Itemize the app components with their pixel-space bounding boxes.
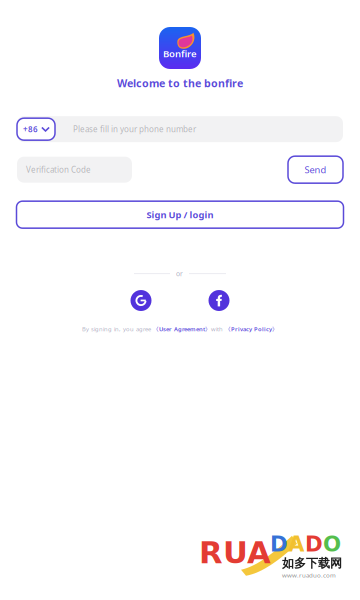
- staticText: with: [211, 325, 225, 333]
- staticText: Welcome to the bonfire: [117, 76, 243, 90]
- staticText: D: [305, 532, 323, 557]
- staticText: 《Privacy Policy》: [225, 325, 278, 333]
- staticText: Bonfire: [163, 47, 197, 60]
- staticText: O: [323, 532, 341, 557]
- staticText: Please fill in your phone number: [73, 124, 196, 134]
- staticText: +86: [23, 124, 38, 135]
- staticText: 如多下载网: [282, 556, 342, 571]
- button[interactable]: +86: [17, 118, 55, 140]
- staticText: Verification Code: [26, 164, 91, 175]
- staticText: By signing in, you agree: [82, 325, 153, 333]
- button[interactable]: Sign Up / login: [16, 201, 343, 228]
- staticText: Sign Up / login: [146, 208, 213, 221]
- staticText: Send: [304, 163, 326, 176]
- staticText: RUA: [199, 535, 271, 570]
- staticText: D: [270, 532, 288, 557]
- button[interactable]: Sign in with Facebook: [208, 290, 229, 311]
- staticText: www.ruaduo.com: [282, 571, 336, 579]
- button[interactable]: Sign in with Google: [130, 290, 151, 311]
- staticText: A: [288, 532, 305, 557]
- button[interactable]: Send: [288, 156, 343, 183]
- staticText: or: [176, 269, 183, 278]
- button[interactable]: 《Privacy Policy》: [225, 325, 278, 333]
- staticText: 《User Agreement》: [153, 325, 211, 333]
- button[interactable]: 《User Agreement》: [153, 325, 211, 333]
